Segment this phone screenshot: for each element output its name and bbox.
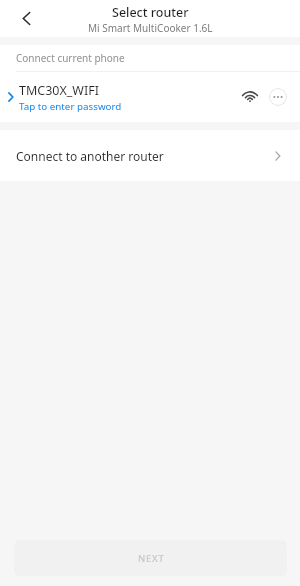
button[interactable]: Back (12, 4, 41, 33)
staticText: Connect current phone (16, 51, 125, 65)
staticText: NEXT (138, 552, 165, 565)
button[interactable]: More options (269, 88, 287, 106)
staticText: Connect to another router (16, 148, 164, 164)
staticText: Tap to enter password (19, 100, 122, 113)
button[interactable]: TMC30X_WIFI (0, 72, 300, 122)
button[interactable]: Connect to another router (0, 130, 300, 181)
staticText: Select router (112, 4, 189, 21)
staticText: TMC30X_WIFI (19, 82, 99, 99)
staticText: Mi Smart MultiCooker 1.6L (88, 21, 213, 35)
button[interactable]: Wi-Fi signal (240, 87, 260, 107)
